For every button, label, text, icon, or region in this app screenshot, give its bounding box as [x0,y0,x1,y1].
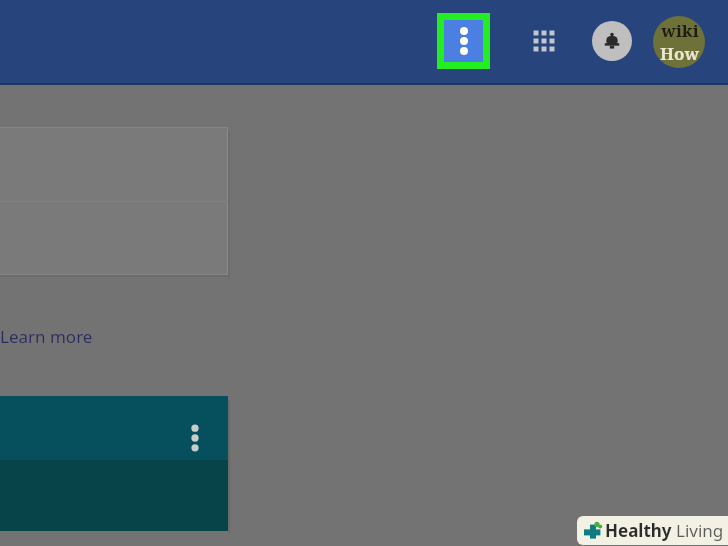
staticText: Healthy [605,519,672,542]
button[interactable]: Google apps [523,20,565,62]
button[interactable]: Notifications [592,21,632,61]
staticText: wiki [661,19,699,42]
button[interactable]: More options [182,420,208,456]
button[interactable]: More options [444,20,483,62]
button[interactable]: More options [0,396,228,531]
button[interactable]: Learn more [0,322,99,351]
button[interactable]: Account: wikiHow [653,16,705,68]
staticText: How [660,42,699,65]
staticText: Learn more [0,325,93,348]
staticText: Living [676,519,724,542]
